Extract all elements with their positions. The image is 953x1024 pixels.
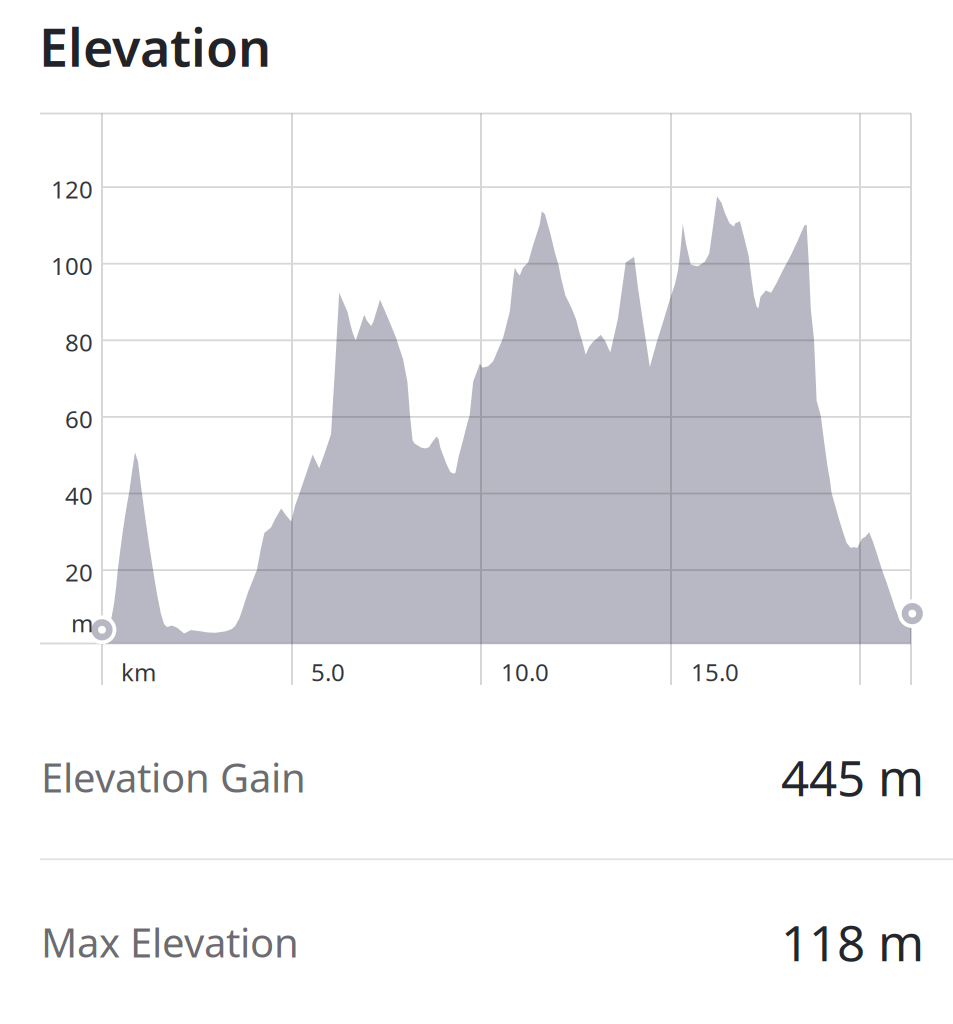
staticText: 20: [65, 556, 93, 588]
staticText: 445 m: [781, 744, 924, 810]
button[interactable]: Max Elevation: [0, 860, 953, 1023]
staticText: 80: [65, 326, 93, 358]
staticText: 15.0: [691, 656, 739, 688]
staticText: 5.0: [311, 656, 345, 688]
staticText: km: [121, 656, 156, 688]
staticText: 40: [65, 480, 93, 511]
staticText: m: [71, 607, 93, 639]
staticText: Elevation Gain: [41, 750, 306, 803]
staticText: 120: [51, 173, 93, 205]
staticText: Max Elevation: [41, 915, 299, 968]
staticText: 100: [51, 250, 93, 282]
staticText: 60: [65, 403, 93, 435]
button[interactable]: Elevation Gain: [0, 695, 953, 858]
staticText: 10.0: [501, 656, 549, 688]
staticText: Elevation: [39, 12, 271, 81]
staticText: 118 m: [781, 909, 924, 975]
